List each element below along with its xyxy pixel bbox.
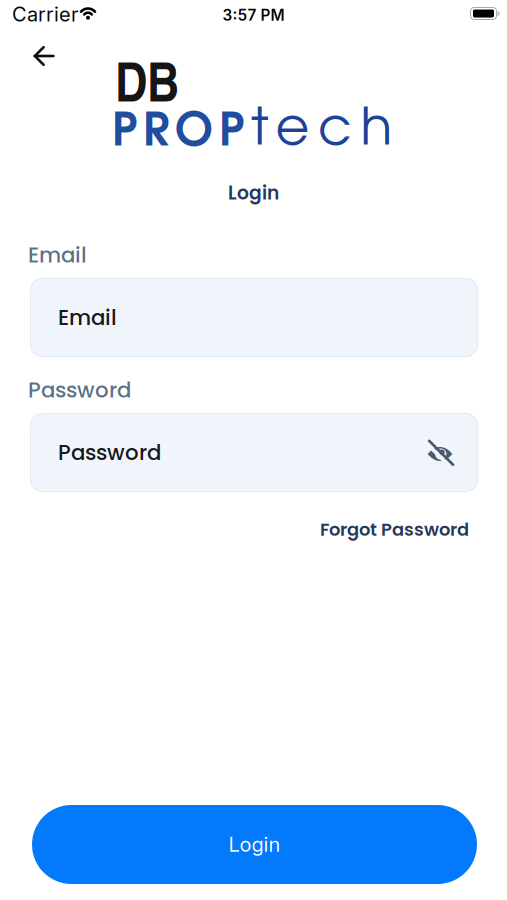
staticText: Email — [28, 240, 87, 270]
staticText: Login — [228, 180, 279, 206]
staticText: PROP — [112, 112, 244, 154]
button[interactable]: Show password — [425, 437, 455, 467]
button[interactable]: Forgot Password — [320, 517, 469, 542]
staticText: Forgot Password — [320, 517, 469, 542]
staticText: DB — [115, 41, 179, 118]
staticText: Password — [28, 375, 131, 405]
button[interactable]: Back — [25, 37, 63, 75]
staticText: Login — [228, 832, 280, 857]
staticText: 3:57 PM — [222, 6, 284, 25]
staticText: Email — [58, 303, 117, 332]
staticText: Carrier — [12, 2, 78, 26]
staticText: Password — [58, 438, 161, 467]
staticText: tech — [251, 106, 392, 154]
button[interactable]: Login — [32, 805, 477, 884]
